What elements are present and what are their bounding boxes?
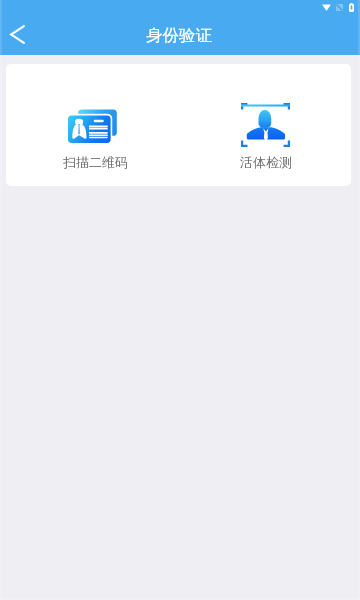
staticText: 身份验证 <box>146 25 212 46</box>
staticText: 活体检测 <box>240 154 292 170</box>
button[interactable]: Back <box>0 14 34 55</box>
button[interactable]: 活体检测 <box>178 64 351 186</box>
staticText: 扫描二维码 <box>63 154 128 170</box>
button[interactable]: 扫描二维码 <box>6 64 178 186</box>
